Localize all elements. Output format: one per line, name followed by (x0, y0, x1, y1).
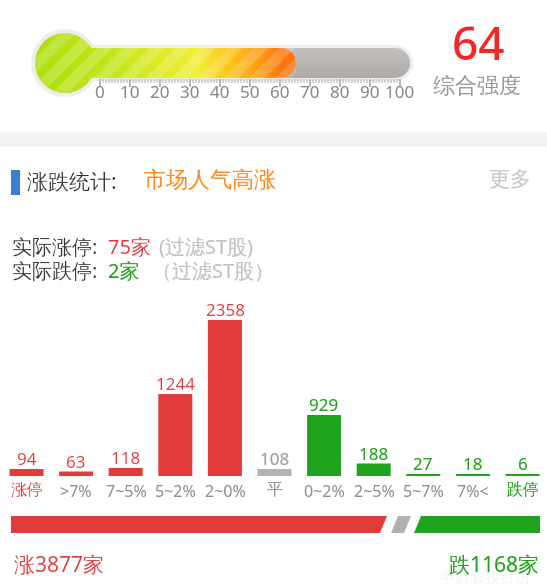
staticText: (过滤ST股) (159, 233, 254, 260)
staticText: 100 (385, 80, 415, 103)
staticText: 30 (180, 80, 200, 103)
staticText: 2358 (206, 298, 245, 321)
staticText: 涨跌统计: (27, 167, 117, 196)
staticText: （过滤ST股） (152, 257, 275, 284)
button[interactable]: 更多 (489, 166, 544, 196)
staticText: 跌停 (507, 480, 539, 500)
staticText: 80 (330, 80, 350, 103)
staticText: 7%< (457, 480, 489, 502)
staticText: 2~5% (354, 480, 395, 502)
staticText: 实际跌停: (12, 257, 98, 284)
staticText: 108 (260, 447, 290, 470)
staticText: 60 (270, 80, 290, 103)
staticText: 50 (240, 80, 260, 103)
staticText: >7% (60, 480, 92, 502)
staticText: 70 (300, 80, 320, 103)
staticText: 20 (150, 80, 170, 103)
staticText: 929 (309, 393, 339, 416)
staticText: 市场人气高涨 (144, 166, 276, 194)
staticText: 64 (452, 11, 505, 74)
staticText: 跌1168家 (449, 550, 540, 579)
staticText: 2~0% (205, 480, 246, 502)
staticText: 118 (111, 446, 141, 469)
staticText: 5~7% (403, 480, 444, 502)
staticText: 63 (66, 450, 86, 473)
staticText: 6 (518, 452, 528, 475)
staticText: 2家 (108, 257, 140, 284)
staticText: 涨停 (11, 480, 43, 500)
staticText: 10 (120, 80, 140, 103)
staticText: 75家 (108, 233, 151, 260)
staticText: 综合强度 (433, 72, 521, 100)
staticText: 5~2% (155, 480, 196, 502)
staticText: 7~5% (106, 480, 147, 502)
staticText: 40 (210, 80, 230, 103)
staticText: 更多 (489, 166, 531, 192)
staticText: 90 (360, 80, 380, 103)
staticText: 实际涨停: (12, 233, 98, 260)
staticText: 平 (267, 480, 283, 500)
staticText: 94 (17, 447, 37, 470)
staticText: 188 (359, 442, 389, 465)
staticText: 0~2% (304, 480, 345, 502)
staticText: 涨3877家 (14, 550, 105, 579)
staticText: 1244 (156, 372, 195, 395)
staticText: 0 (95, 80, 105, 103)
staticText: 中财智投日历 (440, 569, 530, 588)
staticText: 27 (413, 452, 433, 475)
staticText: 18 (463, 452, 483, 475)
